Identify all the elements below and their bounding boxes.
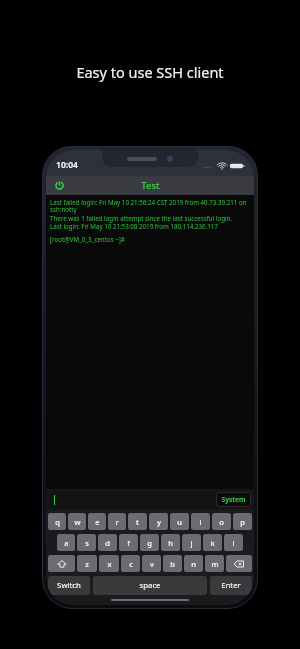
button[interactable]: b	[163, 555, 182, 572]
button[interactable]: k	[203, 534, 222, 551]
button[interactable]: c	[121, 555, 140, 572]
button[interactable]: t	[128, 513, 147, 530]
button[interactable]: s	[77, 534, 96, 551]
button[interactable]: x	[99, 555, 119, 572]
staticText: e	[95, 517, 100, 527]
staticText: y	[157, 517, 161, 527]
staticText: Last login: Fri May 10 21:53:00 2019 fro…	[50, 222, 250, 230]
staticText: [root@VM_0_3_centos ~]#	[50, 235, 250, 243]
staticText: x	[107, 559, 112, 569]
staticText: l	[232, 538, 235, 548]
button[interactable]: e	[88, 513, 106, 530]
button[interactable]: w	[68, 513, 86, 530]
staticText: w	[74, 517, 81, 527]
button[interactable]: v	[142, 555, 161, 572]
button[interactable]: o	[212, 513, 231, 530]
staticText: v	[150, 559, 154, 569]
button[interactable]: h	[161, 534, 180, 551]
button[interactable]: j	[182, 534, 201, 551]
button[interactable]: Shift	[48, 555, 75, 572]
staticText: s	[85, 538, 89, 548]
staticText: f	[127, 538, 130, 548]
staticText: Switch	[57, 580, 81, 591]
staticText: h	[168, 538, 173, 548]
staticText: b	[170, 559, 175, 569]
staticText: c	[129, 559, 133, 569]
button[interactable]: z	[77, 555, 97, 572]
staticText: r	[115, 517, 119, 527]
staticText: o	[219, 517, 224, 527]
button[interactable]	[49, 492, 251, 508]
button[interactable]: n	[184, 555, 203, 572]
button[interactable]: i	[191, 513, 210, 530]
button[interactable]: y	[149, 513, 168, 530]
button[interactable]: Power	[51, 177, 68, 194]
staticText: There was 1 failed login attempt since t…	[50, 214, 250, 222]
button[interactable]: q	[48, 513, 66, 530]
staticText: System	[221, 495, 246, 504]
staticText: i	[199, 517, 202, 527]
button[interactable]: Switch	[48, 576, 90, 595]
button[interactable]: f	[119, 534, 138, 551]
staticText: k	[210, 538, 215, 548]
staticText: q	[55, 517, 60, 527]
button[interactable]: a	[57, 534, 75, 551]
staticText: Test	[141, 179, 160, 192]
staticText: u	[177, 517, 182, 527]
staticText: g	[147, 538, 152, 548]
staticText: 10:04	[56, 159, 78, 171]
staticText: z	[85, 559, 89, 569]
button[interactable]: r	[108, 513, 126, 530]
button[interactable]: g	[140, 534, 159, 551]
staticText: j	[190, 538, 193, 548]
staticText: space	[139, 580, 161, 591]
button[interactable]: u	[170, 513, 189, 530]
button[interactable]: Backspace	[226, 555, 252, 572]
staticText: m	[211, 559, 219, 569]
button[interactable]: System	[216, 492, 251, 507]
button[interactable]: p	[233, 513, 252, 530]
button[interactable]: space	[93, 576, 207, 595]
staticText: p	[240, 517, 245, 527]
button[interactable]: l	[224, 534, 243, 551]
staticText: Last failed login: Fri May 10 21:56:24 C…	[50, 198, 250, 214]
staticText: Easy to use SSH client	[76, 62, 224, 82]
button[interactable]: d	[98, 534, 117, 551]
staticText: n	[191, 559, 196, 569]
staticText: t	[136, 517, 139, 527]
staticText: Enter	[221, 580, 241, 591]
staticText: a	[64, 538, 69, 548]
button[interactable]: Enter	[210, 576, 252, 595]
button[interactable]: m	[205, 555, 224, 572]
staticText: d	[105, 538, 110, 548]
